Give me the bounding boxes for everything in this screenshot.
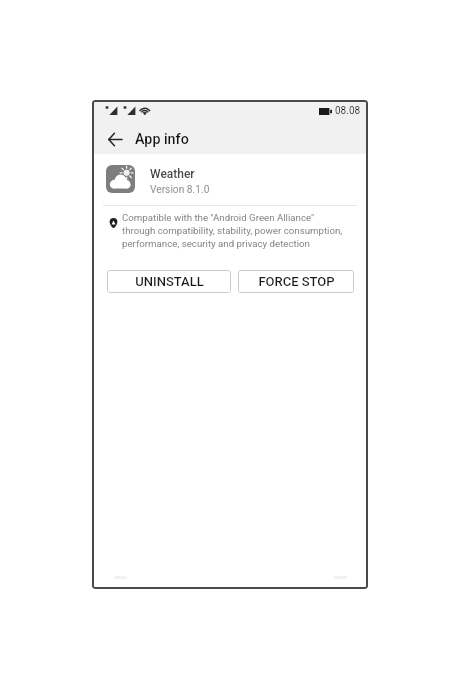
button[interactable]: FORCE STOP xyxy=(238,270,354,293)
staticText: 08.08 xyxy=(335,105,361,117)
staticText: Weather xyxy=(150,167,195,181)
staticText: Compatible with the "Android Green Allia… xyxy=(122,212,343,250)
staticText: UNINSTALL xyxy=(135,274,204,289)
staticText: Version 8.1.0 xyxy=(150,184,210,196)
staticText: FORCE STOP xyxy=(258,274,335,289)
button[interactable]: UNINSTALL xyxy=(107,270,231,293)
staticText: App info xyxy=(135,131,189,148)
button[interactable]: Back xyxy=(103,124,127,154)
button[interactable]: Weather xyxy=(92,152,368,204)
